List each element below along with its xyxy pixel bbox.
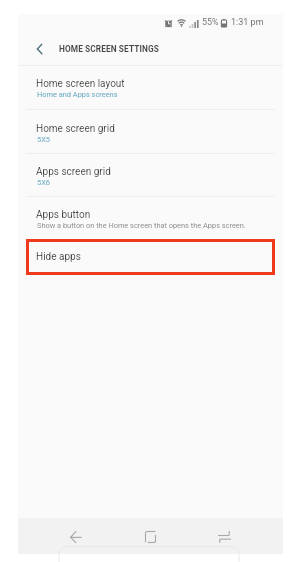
staticText: Hide apps: [36, 251, 81, 263]
staticText: Show a button on the Home screen that op…: [37, 221, 246, 230]
button[interactable]: Home screen grid: [18, 110, 283, 154]
staticText: Apps screen grid: [36, 166, 111, 178]
button[interactable]: Back: [57, 519, 93, 555]
button[interactable]: Home: [132, 519, 168, 555]
staticText: 5X5: [37, 135, 50, 144]
staticText: Home screen grid: [36, 123, 115, 135]
staticText: Apps button: [36, 209, 91, 221]
staticText: HOME SCREEN SETTINGS: [59, 44, 159, 54]
staticText: 1:31 pm: [231, 17, 264, 28]
staticText: Home and Apps screens: [37, 90, 118, 99]
button[interactable]: Apps screen grid: [18, 153, 283, 197]
staticText: 5X6: [37, 178, 50, 187]
button[interactable]: Hide apps: [26, 239, 275, 275]
button[interactable]: Apps button: [18, 197, 283, 240]
staticText: 55%: [202, 17, 219, 28]
button[interactable]: Recent apps: [206, 519, 242, 555]
staticText: Home screen layout: [36, 78, 125, 90]
button[interactable]: Navigate up: [29, 33, 49, 65]
button[interactable]: Home screen layout: [18, 65, 283, 110]
